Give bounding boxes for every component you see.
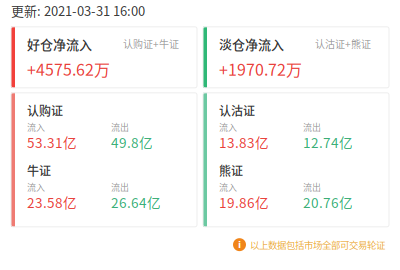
staticText: 认沽证+熊证: [315, 36, 371, 51]
staticText: 认购证: [27, 102, 63, 119]
staticText: 牛证: [27, 162, 51, 179]
staticText: 熊证: [219, 162, 243, 179]
button[interactable]: 淡仓净流入: [203, 27, 389, 88]
staticText: 更新: 2021-03-31 16:00: [11, 1, 145, 20]
staticText: 流出: [111, 180, 129, 193]
staticText: 13.83亿: [219, 132, 269, 152]
staticText: 26.64亿: [111, 192, 161, 212]
button[interactable]: 认沽证: [203, 93, 389, 227]
staticText: +4575.62万: [27, 57, 110, 80]
staticText: 淡仓净流入: [219, 34, 284, 53]
staticText: 流出: [303, 180, 321, 193]
staticText: i: [238, 239, 241, 250]
staticText: 以上数据包括市场全部可交易轮证: [250, 238, 385, 251]
staticText: 19.86亿: [219, 192, 269, 212]
staticText: +1970.72万: [219, 57, 302, 80]
button[interactable]: 认购证: [11, 93, 197, 227]
staticText: 流出: [111, 120, 129, 133]
staticText: 流入: [219, 180, 237, 193]
staticText: 23.58亿: [27, 192, 77, 212]
staticText: 认购证+牛证: [123, 36, 179, 51]
staticText: 流出: [303, 120, 321, 133]
staticText: 好仓净流入: [27, 34, 92, 53]
staticText: 12.74亿: [303, 132, 353, 152]
staticText: 流入: [27, 180, 45, 193]
staticText: 认沽证: [219, 102, 255, 119]
staticText: 流入: [219, 120, 237, 133]
staticText: 49.8亿: [111, 132, 153, 152]
staticText: 53.31亿: [27, 132, 77, 152]
staticText: 流入: [27, 120, 45, 133]
staticText: 20.76亿: [303, 192, 353, 212]
button[interactable]: 好仓净流入: [11, 27, 197, 88]
